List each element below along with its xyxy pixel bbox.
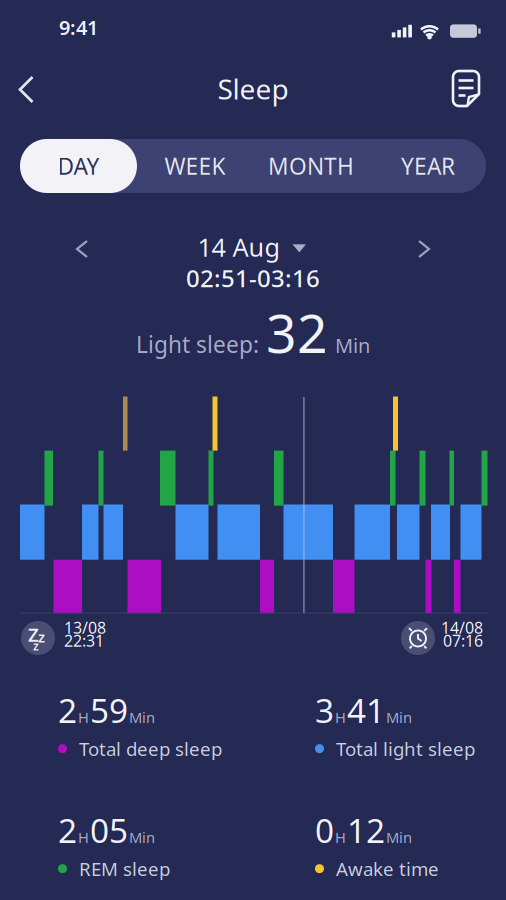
staticText: YEAR <box>401 151 455 181</box>
button[interactable]: Sleep report <box>442 66 486 112</box>
staticText: DAY <box>57 151 99 181</box>
staticText: 0 <box>315 808 334 852</box>
staticText: Light sleep: <box>136 329 259 359</box>
staticText: 59 <box>90 688 128 732</box>
staticText: 22:31 <box>64 630 104 651</box>
staticText: 05 <box>90 808 128 852</box>
staticText: 9:41 <box>59 14 98 41</box>
staticText: Min <box>386 708 412 727</box>
staticText: z <box>33 638 39 654</box>
staticText: Sleep <box>217 70 288 107</box>
staticText: REM sleep <box>79 856 170 881</box>
button[interactable]: DAY <box>20 139 137 193</box>
staticText: Total deep sleep <box>79 736 222 761</box>
staticText: 07:16 <box>443 630 483 651</box>
button[interactable]: MONTH <box>253 139 369 193</box>
staticText: Min <box>129 708 155 727</box>
staticText: Total light sleep <box>336 736 475 761</box>
staticText: 2 <box>58 688 77 732</box>
button[interactable]: Next day <box>406 232 442 266</box>
staticText: 02:51-03:16 <box>186 262 320 294</box>
staticText: 13/08 <box>64 617 106 638</box>
staticText: Min <box>386 828 412 847</box>
staticText: 14 Aug <box>197 230 280 264</box>
staticText: Z <box>28 622 39 647</box>
button[interactable]: Previous day <box>64 232 100 266</box>
staticText: MONTH <box>268 151 354 181</box>
staticText: Awake time <box>336 856 439 881</box>
button[interactable]: Select date <box>197 230 308 264</box>
staticText: H <box>78 708 89 727</box>
staticText: 2 <box>58 808 77 852</box>
staticText: WEEK <box>164 151 225 181</box>
staticText: Min <box>335 332 370 359</box>
staticText: 32 <box>266 297 328 368</box>
staticText: H <box>335 828 346 847</box>
staticText: H <box>78 828 89 847</box>
staticText: z <box>38 627 45 646</box>
button[interactable]: WEEK <box>137 139 253 193</box>
staticText: H <box>335 708 346 727</box>
button[interactable]: Back <box>8 69 48 110</box>
staticText: Min <box>129 828 155 847</box>
staticText: 12 <box>347 808 385 852</box>
staticText: 14/08 <box>441 617 483 638</box>
staticText: 3 <box>315 688 334 732</box>
staticText: 41 <box>347 688 385 732</box>
button[interactable]: YEAR <box>370 139 486 193</box>
